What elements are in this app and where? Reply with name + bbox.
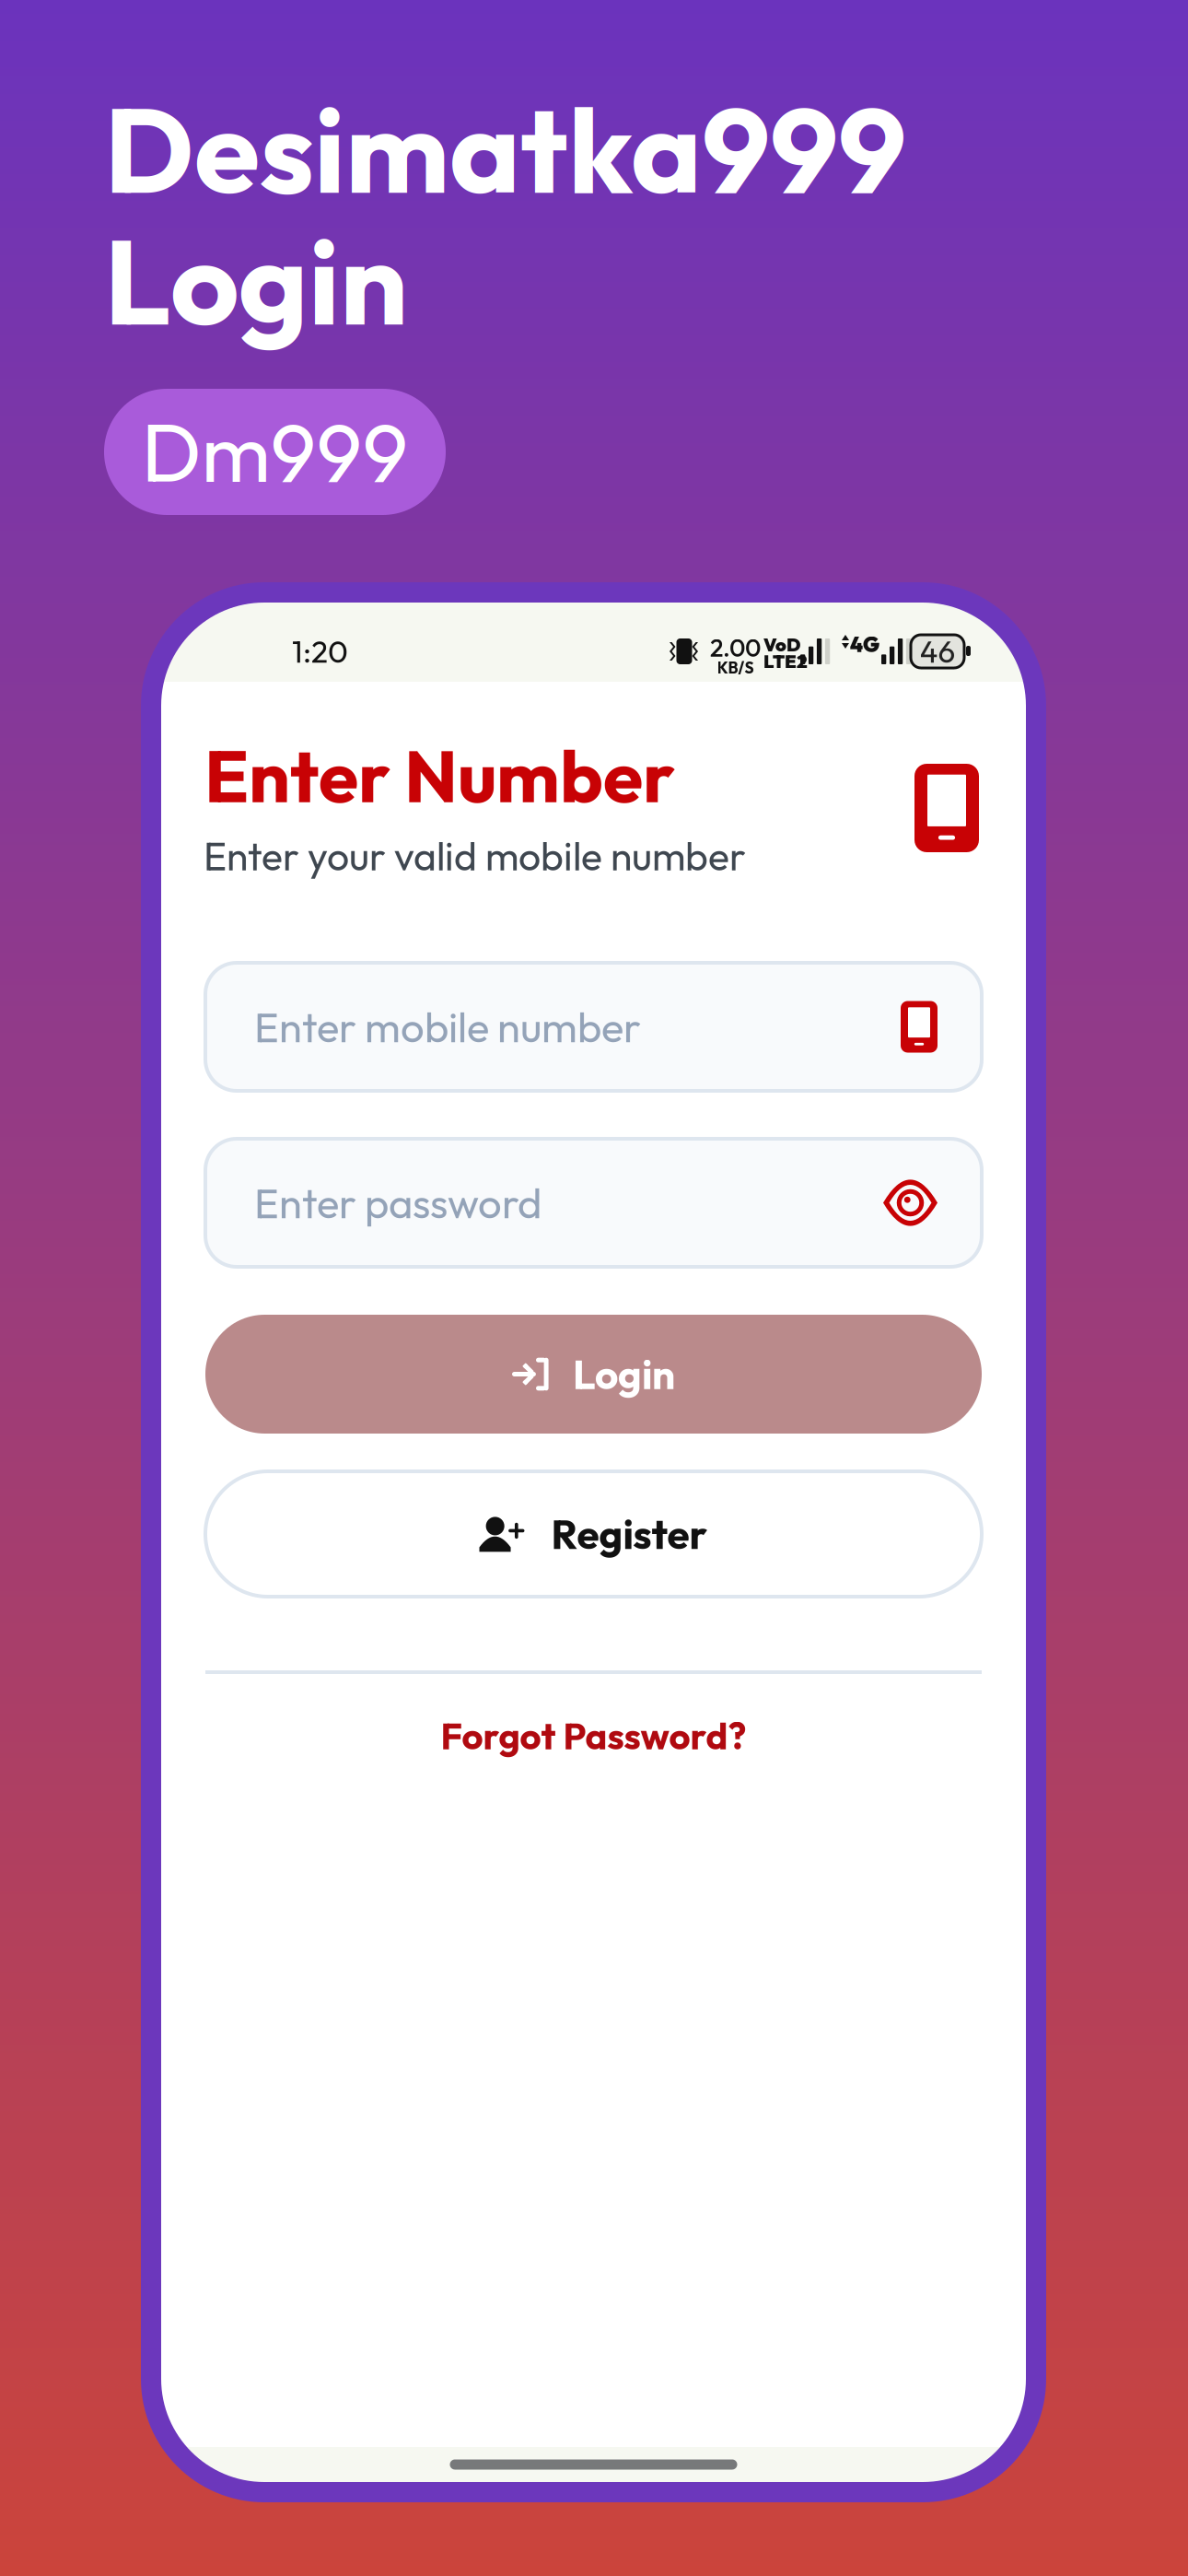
button[interactable]: Login <box>205 1315 982 1434</box>
staticText: Register <box>551 1508 708 1560</box>
staticText: 46 <box>920 632 955 671</box>
staticText: Login <box>104 205 408 356</box>
staticText: Enter your valid mobile number <box>204 831 746 881</box>
button[interactable]: Forgot Password? <box>205 1706 982 1765</box>
staticText: Dm999 <box>141 401 408 503</box>
staticText: VoD <box>763 633 800 656</box>
staticText: Enter Number <box>204 730 675 821</box>
button[interactable]: Register <box>205 1471 982 1597</box>
staticText: Forgot Password? <box>441 1713 746 1759</box>
staticText: 1:20 <box>292 632 348 671</box>
staticText: Enter password <box>254 1176 542 1229</box>
staticText: LTE2 <box>763 650 808 673</box>
staticText: Desimatka999 <box>104 74 906 224</box>
staticText: Enter mobile number <box>254 1000 641 1053</box>
staticText: 4G <box>850 631 879 657</box>
staticText: 2.00 <box>710 632 761 663</box>
staticText: Login <box>573 1349 675 1400</box>
staticText: KB/S <box>717 657 754 678</box>
